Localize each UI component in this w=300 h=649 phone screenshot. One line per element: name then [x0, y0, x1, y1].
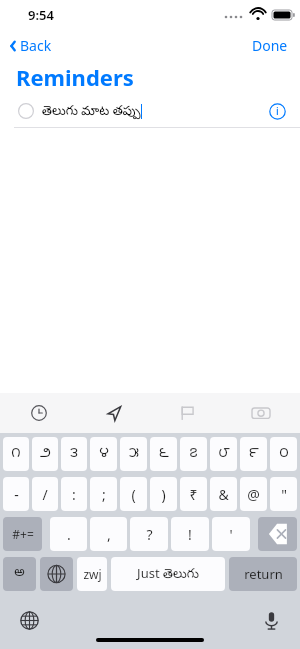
staticText: ౮	[218, 445, 230, 464]
button[interactable]: ౬	[150, 437, 177, 471]
button[interactable]: ౭	[180, 437, 207, 471]
button[interactable]: !	[171, 517, 209, 551]
button[interactable]: "	[270, 477, 297, 511]
button[interactable]: Back	[6, 36, 52, 55]
button[interactable]: Globe	[14, 605, 44, 635]
staticText: ?	[146, 525, 153, 544]
staticText: i	[276, 104, 279, 118]
button[interactable]: Details	[266, 100, 288, 122]
staticText: ,	[107, 525, 111, 544]
button[interactable]: ౮	[210, 437, 237, 471]
button[interactable]: #+=	[3, 517, 42, 551]
button[interactable]: zwj	[77, 557, 107, 591]
staticText: :	[72, 485, 76, 504]
staticText: zwj	[83, 566, 102, 582]
button[interactable]: ౪	[90, 437, 117, 471]
button[interactable]: Time	[22, 396, 56, 430]
staticText: -	[14, 485, 19, 504]
staticText: @	[247, 485, 260, 504]
button[interactable]: /	[32, 477, 58, 511]
staticText: తెలుగు మాట తప్పు	[42, 101, 141, 121]
button[interactable]: ,	[90, 517, 127, 551]
button[interactable]: ?	[130, 517, 168, 551]
button[interactable]: Dictation	[256, 605, 286, 635]
button[interactable]: .	[50, 517, 87, 551]
button[interactable]: ౧	[3, 437, 29, 471]
staticText: /	[42, 485, 48, 504]
button[interactable]: తెలుగు మాట తప్పు	[0, 94, 300, 128]
staticText: '	[229, 525, 233, 544]
staticText: (	[131, 485, 136, 504]
button[interactable]: Just తెలుగు	[111, 557, 225, 591]
button[interactable]: Switch keyboard	[40, 557, 73, 591]
button[interactable]: Flag	[170, 396, 204, 430]
button[interactable]: '	[212, 517, 250, 551]
staticText: Done	[252, 36, 288, 55]
staticText: )	[161, 485, 166, 504]
staticText: ౯	[249, 445, 259, 464]
staticText: .	[67, 525, 71, 544]
staticText: అ	[14, 565, 25, 583]
staticText: ;	[102, 485, 106, 504]
button[interactable]: ౨	[32, 437, 58, 471]
staticText: #+=	[12, 526, 34, 542]
staticText: ₹	[189, 485, 198, 504]
staticText: ౩	[70, 445, 78, 464]
button[interactable]: &	[210, 477, 237, 511]
staticText: return	[244, 565, 283, 583]
button[interactable]: Done	[240, 32, 300, 59]
staticText: !	[188, 525, 192, 544]
button[interactable]: (	[120, 477, 147, 511]
staticText: ౧	[11, 445, 21, 464]
button[interactable]: ;	[90, 477, 117, 511]
button[interactable]: Camera	[244, 396, 278, 430]
button[interactable]: Location	[96, 396, 130, 430]
button[interactable]: ౦	[270, 437, 297, 471]
staticText: Reminders	[16, 62, 134, 92]
staticText: ౫	[129, 445, 139, 464]
button[interactable]: Backspace	[258, 517, 297, 551]
button[interactable]: :	[61, 477, 87, 511]
staticText: &	[218, 485, 229, 504]
staticText: 9:54	[28, 6, 54, 24]
staticText: ౬	[159, 445, 169, 464]
staticText: Back	[20, 36, 52, 55]
staticText: ౪	[99, 445, 109, 464]
staticText: "	[281, 485, 287, 504]
staticText: ౨	[40, 445, 51, 464]
button[interactable]: ₹	[180, 477, 207, 511]
button[interactable]: -	[3, 477, 29, 511]
button[interactable]: @	[240, 477, 267, 511]
button[interactable]: ౩	[61, 437, 87, 471]
staticText: ౭	[189, 445, 198, 464]
button[interactable]: ౯	[240, 437, 267, 471]
staticText: ౦	[279, 445, 289, 464]
button[interactable]: )	[150, 477, 177, 511]
button[interactable]: అ	[3, 557, 36, 591]
button[interactable]: return	[229, 557, 297, 591]
button[interactable]: ౫	[120, 437, 147, 471]
staticText: Just తెలుగు	[137, 564, 199, 584]
